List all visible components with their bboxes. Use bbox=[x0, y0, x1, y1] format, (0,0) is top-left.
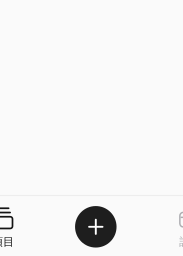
button[interactable]: 新規作成 bbox=[75, 206, 116, 248]
staticText: 項目 bbox=[0, 235, 14, 249]
button[interactable]: 項目 bbox=[0, 207, 31, 253]
staticText: 設定 bbox=[179, 235, 183, 249]
button[interactable]: 設定 bbox=[160, 207, 183, 253]
